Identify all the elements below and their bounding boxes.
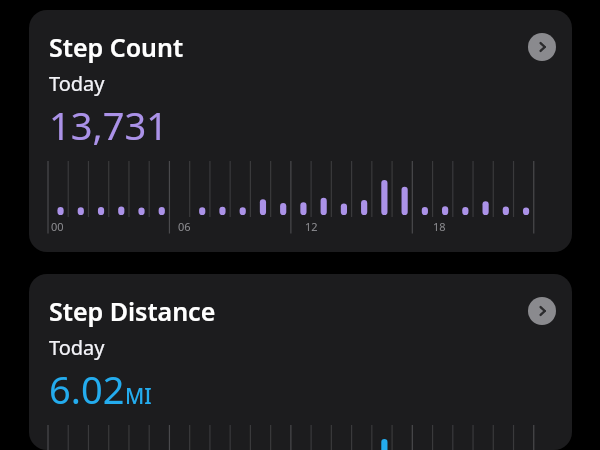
- button[interactable]: Show step count details: [528, 33, 556, 61]
- staticText: Step Count: [49, 30, 184, 64]
- button[interactable]: Show step distance details: [528, 297, 556, 325]
- staticText: 6.02: [49, 363, 125, 415]
- staticText: MI: [125, 382, 152, 411]
- staticText: Today: [49, 334, 105, 361]
- staticText: 00: [51, 219, 64, 234]
- staticText: 06: [178, 219, 191, 234]
- staticText: 13,731: [49, 99, 168, 151]
- staticText: 12: [305, 219, 318, 234]
- staticText: 18: [433, 219, 446, 234]
- staticText: Step Distance: [49, 294, 216, 328]
- button[interactable]: Step Count: [29, 10, 572, 252]
- button[interactable]: Step Distance: [29, 274, 572, 450]
- staticText: Today: [49, 70, 105, 97]
